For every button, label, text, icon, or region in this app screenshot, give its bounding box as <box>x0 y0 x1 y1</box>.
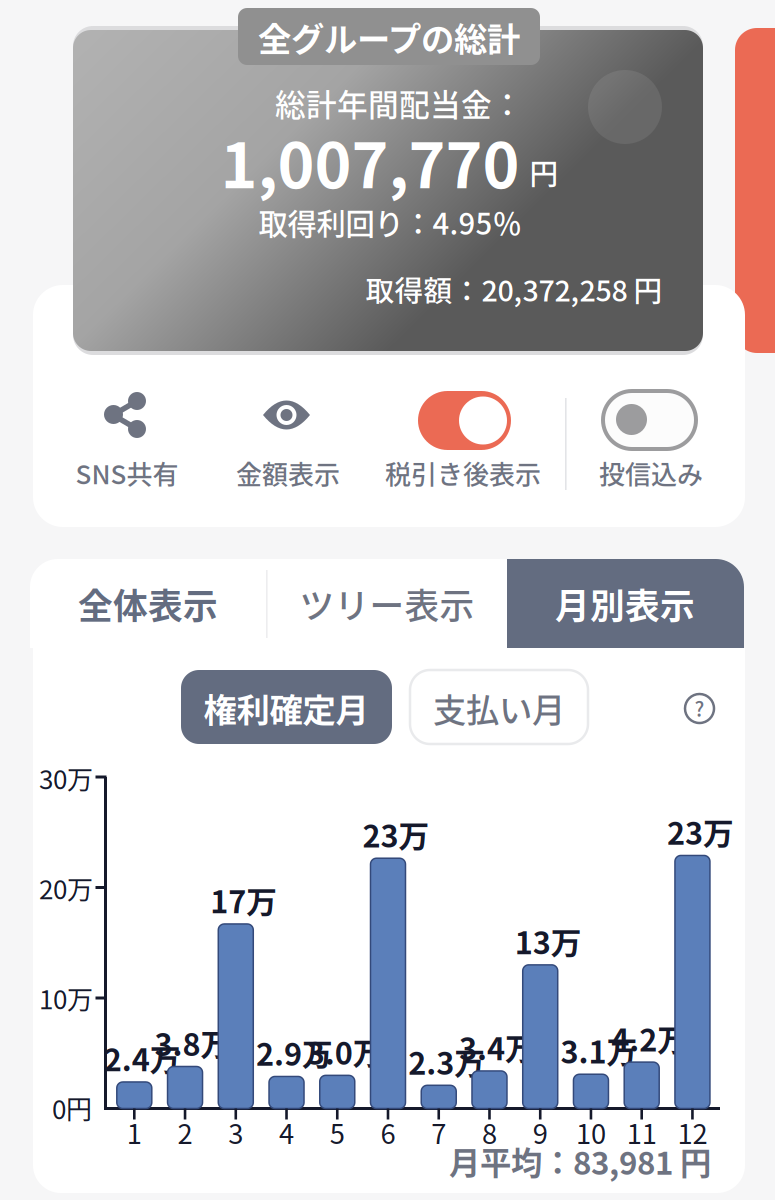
staticText: 3.1万 <box>560 1028 637 1072</box>
staticText: 3.8万 <box>154 1020 231 1065</box>
staticText: 4.2万 <box>611 1016 688 1060</box>
staticText: ツリー表示 <box>299 579 474 629</box>
staticText: 投信込み <box>599 454 703 492</box>
staticText: 1,007,770 <box>220 116 519 206</box>
staticText: 2.3万 <box>408 1039 485 1083</box>
staticText: 13万 <box>515 919 582 963</box>
staticText: 6 <box>380 1112 395 1152</box>
button[interactable]: 全体表示 <box>0 0 775 1200</box>
button[interactable]: 税引き後表示 <box>0 0 775 1200</box>
staticText: 10万 <box>39 979 93 1017</box>
button[interactable]: 権利確定月 <box>0 0 775 1200</box>
staticText: 円 <box>529 151 558 193</box>
staticText: 11 <box>627 1112 657 1152</box>
staticText: 10 <box>576 1112 606 1152</box>
staticText: 9 <box>533 1112 548 1152</box>
staticText: 権利確定月 <box>203 684 368 732</box>
staticText: 税引き後表示 <box>385 454 541 492</box>
staticText: 取得利回り：4.95％ <box>258 201 521 243</box>
staticText: 取得額：20,372,258 円 <box>365 268 662 310</box>
staticText: ? <box>694 693 704 722</box>
staticText: SNS共有 <box>75 454 178 492</box>
button[interactable]: 金額表示 <box>0 0 775 1200</box>
button[interactable]: 月別表示 <box>0 0 775 1200</box>
staticText: 5 <box>330 1112 345 1152</box>
staticText: 3.4万 <box>459 1025 536 1069</box>
staticText: 3.0万 <box>307 1029 384 1073</box>
staticText: 20万 <box>39 869 93 907</box>
staticText: 月別表示 <box>555 579 695 629</box>
staticText: 23万 <box>667 809 734 854</box>
button[interactable]: ツリー表示 <box>0 0 775 1200</box>
staticText: 3 <box>228 1112 243 1152</box>
staticText: 2.9万 <box>256 1030 333 1075</box>
staticText: 全体表示 <box>78 579 218 629</box>
staticText: 2.4万 <box>104 1036 181 1080</box>
staticText: 4 <box>279 1112 294 1152</box>
button[interactable]: SNS共有 <box>0 0 775 1200</box>
staticText: 23万 <box>362 812 429 856</box>
staticText: 月平均：83,981 円 <box>449 1138 711 1184</box>
staticText: 全グループの総計 <box>258 13 520 61</box>
staticText: 0円 <box>52 1089 92 1127</box>
staticText: 2 <box>177 1112 192 1152</box>
staticText: 8 <box>482 1112 497 1152</box>
staticText: 1 <box>127 1112 142 1152</box>
staticText: 7 <box>431 1112 446 1152</box>
button[interactable]: ヘルプ <box>0 0 775 1200</box>
staticText: 17万 <box>210 878 277 922</box>
staticText: 30万 <box>39 759 93 797</box>
staticText: 総計年間配当金： <box>275 81 523 125</box>
staticText: 金額表示 <box>236 454 340 492</box>
staticText: 12 <box>677 1112 707 1152</box>
staticText: 支払い月 <box>433 684 565 732</box>
button[interactable]: 投信込み <box>0 0 775 1200</box>
button[interactable]: 支払い月 <box>0 0 775 1200</box>
